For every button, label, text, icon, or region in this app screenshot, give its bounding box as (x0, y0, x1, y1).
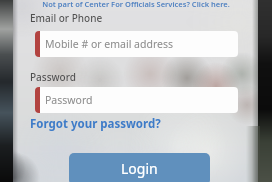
button[interactable]: Login (69, 153, 210, 182)
button[interactable]: Forgot your password? (30, 116, 161, 132)
button[interactable]: Not part of Center For Officials Service… (16, 0, 256, 9)
staticText: Password (45, 93, 93, 107)
staticText: Mobile # or email address (45, 37, 174, 51)
staticText: Login (121, 159, 158, 178)
button[interactable]: Mobile # or email address (35, 31, 238, 57)
staticText: Password (30, 70, 76, 84)
button[interactable]: Password (35, 87, 238, 113)
staticText: Email or Phone (30, 11, 103, 25)
